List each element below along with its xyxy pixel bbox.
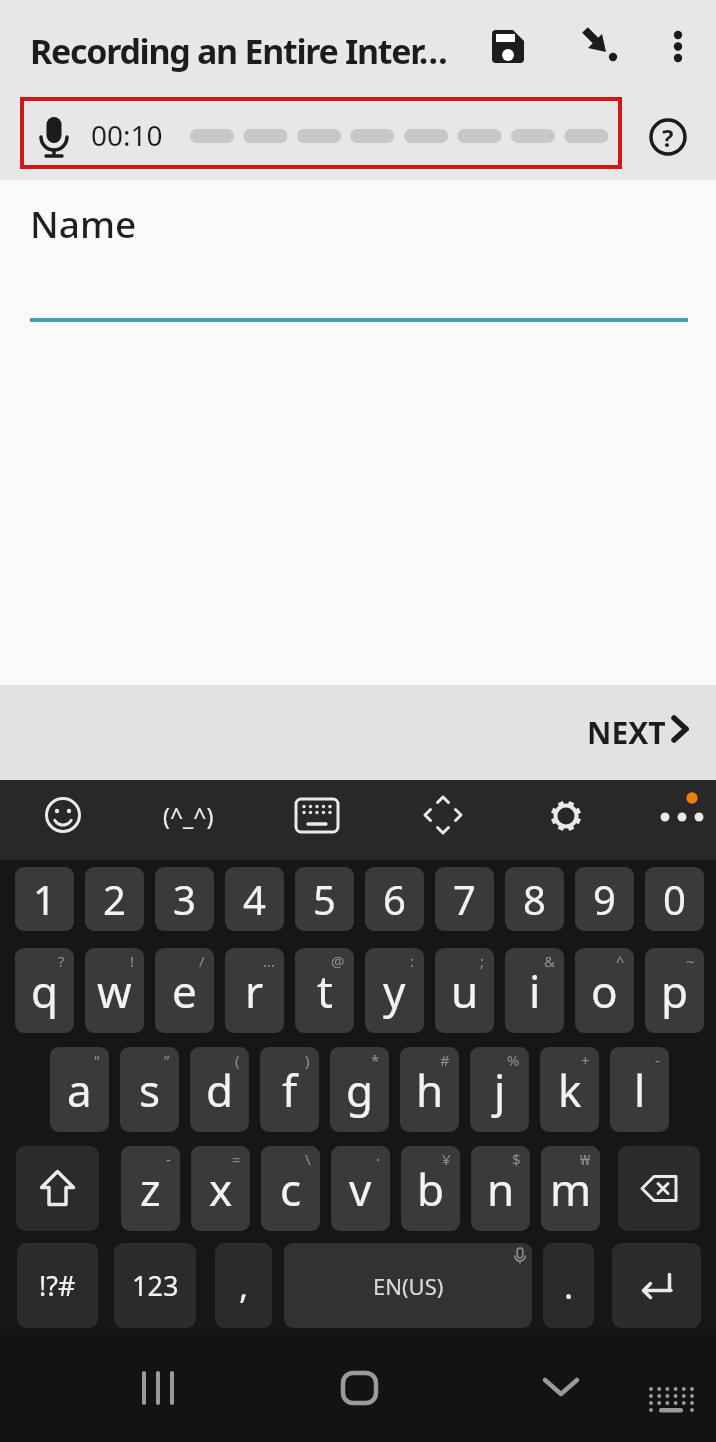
staticText: z <box>140 1159 161 1219</box>
button[interactable] <box>537 1372 585 1420</box>
button[interactable]: !?# <box>17 1243 98 1328</box>
button[interactable]: 8 <box>505 867 564 931</box>
button[interactable]: 3 <box>155 867 214 931</box>
button[interactable]: Name <box>28 192 690 326</box>
staticText: ? <box>662 121 674 154</box>
button[interactable] <box>419 791 467 839</box>
staticText: o <box>591 961 618 1021</box>
staticText: Name <box>30 198 137 248</box>
button[interactable]: 1 <box>15 867 74 931</box>
button[interactable]: 0 <box>645 867 704 931</box>
staticText: 4 <box>243 872 266 926</box>
button[interactable]: d <box>190 1047 249 1132</box>
button[interactable]: 7 <box>435 867 494 931</box>
button[interactable]: x <box>191 1146 250 1231</box>
button[interactable]: w <box>85 948 144 1033</box>
button[interactable]: m <box>541 1146 600 1231</box>
button[interactable]: j <box>470 1047 529 1132</box>
button[interactable]: 5 <box>295 867 354 931</box>
button[interactable] <box>576 20 624 68</box>
staticText: h <box>416 1060 444 1120</box>
staticText: · <box>376 1149 381 1169</box>
button[interactable]: l <box>610 1047 669 1132</box>
button[interactable]: s <box>120 1047 179 1132</box>
staticText: ¥ <box>442 1149 451 1169</box>
button[interactable]: r <box>225 948 284 1033</box>
staticText: b <box>417 1159 445 1219</box>
button[interactable]: 123 <box>114 1243 196 1328</box>
staticText: \ <box>305 1149 311 1169</box>
staticText: ( <box>235 1050 240 1070</box>
button[interactable]: 2 <box>85 867 144 931</box>
button[interactable]: p <box>645 948 704 1033</box>
button[interactable] <box>542 791 590 839</box>
button[interactable] <box>484 22 532 70</box>
staticText: , <box>239 1263 249 1309</box>
button[interactable]: , <box>215 1243 272 1328</box>
button[interactable]: 4 <box>225 867 284 931</box>
staticText: g <box>346 1060 374 1120</box>
staticText: % <box>507 1050 520 1070</box>
staticText: 3 <box>173 872 196 926</box>
staticText: r <box>245 961 264 1021</box>
staticText: k <box>558 1060 582 1120</box>
button[interactable]: k <box>540 1047 599 1132</box>
staticText: p <box>661 961 689 1021</box>
button[interactable]: 00:10 <box>22 99 620 167</box>
button[interactable]: o <box>575 948 634 1033</box>
button[interactable] <box>646 1378 698 1414</box>
staticText: EN(US) <box>373 1271 444 1301</box>
staticText: !?# <box>39 1267 76 1304</box>
button[interactable] <box>16 1146 99 1231</box>
button[interactable] <box>293 791 341 839</box>
staticText: w <box>97 961 132 1021</box>
staticText: 2 <box>103 872 126 926</box>
staticText: NEXT <box>587 712 666 753</box>
staticText: q <box>31 961 59 1021</box>
button[interactable]: a <box>50 1047 109 1132</box>
button[interactable]: y <box>365 948 424 1033</box>
staticText: @ <box>331 951 345 971</box>
button[interactable]: z <box>121 1146 180 1231</box>
button[interactable]: n <box>471 1146 530 1231</box>
button[interactable] <box>134 1372 182 1420</box>
button[interactable] <box>654 22 702 70</box>
button[interactable]: . <box>543 1243 594 1328</box>
button[interactable]: (^_^) <box>152 791 224 839</box>
button[interactable] <box>336 1372 384 1420</box>
staticText: v <box>349 1159 372 1219</box>
button[interactable]: NEXT <box>560 695 716 765</box>
staticText: ? <box>58 951 65 971</box>
button[interactable] <box>612 1243 701 1328</box>
staticText: “ <box>94 1050 100 1070</box>
staticText: - <box>655 1050 660 1070</box>
button[interactable]: q <box>15 948 74 1033</box>
button[interactable]: EN(US) <box>284 1243 532 1328</box>
staticText: Recording an Entire Inter… <box>30 28 447 74</box>
button[interactable]: b <box>401 1146 460 1231</box>
staticText: - <box>166 1149 171 1169</box>
button[interactable] <box>652 786 712 842</box>
staticText: j <box>494 1060 506 1120</box>
button[interactable]: v <box>331 1146 390 1231</box>
staticText: / <box>199 951 205 971</box>
button[interactable]: c <box>261 1146 320 1231</box>
button[interactable]: i <box>505 948 564 1033</box>
staticText: 8 <box>523 872 546 926</box>
button[interactable]: f <box>260 1047 319 1132</box>
staticText: 1 <box>33 872 56 926</box>
button[interactable] <box>39 791 87 839</box>
button[interactable]: h <box>400 1047 459 1132</box>
button[interactable]: t <box>295 948 354 1033</box>
staticText: # <box>440 1050 450 1070</box>
staticText: f <box>282 1060 298 1120</box>
button[interactable]: ? <box>646 115 690 159</box>
staticText: $ <box>512 1149 521 1169</box>
button[interactable]: u <box>435 948 494 1033</box>
button[interactable]: g <box>330 1047 389 1132</box>
staticText: (^_^) <box>163 800 214 831</box>
button[interactable] <box>618 1146 700 1231</box>
button[interactable]: 6 <box>365 867 424 931</box>
button[interactable]: 9 <box>575 867 634 931</box>
button[interactable]: e <box>155 948 214 1033</box>
